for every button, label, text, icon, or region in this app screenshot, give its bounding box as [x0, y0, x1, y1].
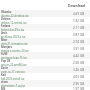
button[interactable]: SUSE: [0, 52, 90, 59]
staticText: Ubuntu: [1, 10, 12, 14]
staticText: mint-21-cinnamon.iso: [1, 42, 28, 45]
staticText: 2.95 GB: [73, 82, 85, 86]
staticText: Zorin: [1, 66, 8, 70]
staticText: Download: [68, 3, 85, 8]
staticText: archlinux-2023-x.iso: [1, 35, 26, 38]
staticText: Pop OS: [1, 59, 11, 63]
staticText: 2.74 GB: [73, 40, 85, 44]
staticText: opensuse-leap-15.iso: [1, 56, 27, 59]
staticText: 1.82 GB: [73, 19, 85, 23]
button[interactable]: Mint: [0, 38, 90, 45]
staticText: Kali: [1, 73, 6, 77]
staticText: ubuntu-22-desktop.iso: [1, 14, 29, 17]
staticText: 4.42 GB: [73, 54, 85, 58]
staticText: 2.11 GB: [73, 26, 85, 30]
staticText: Fedora: [1, 24, 11, 28]
staticText: 2.58 GB: [73, 61, 85, 65]
staticText: SUSE: [1, 52, 8, 56]
staticText: 4.03 GB: [73, 75, 85, 79]
staticText: 1.97 GB: [73, 87, 85, 90]
staticText: Debian: [1, 17, 11, 21]
button[interactable]: Arch: [0, 31, 90, 38]
staticText: MX: [1, 87, 6, 90]
button[interactable]: elem: [0, 80, 90, 87]
staticText: Arch: [1, 31, 8, 35]
staticText: fedora-live-39-x.iso: [1, 28, 25, 31]
staticText: debian-12-netinst.iso: [1, 21, 27, 24]
staticText: 0.87 GB: [73, 33, 85, 37]
staticText: Manjaro: [1, 45, 13, 49]
staticText: 4.69 GB: [73, 12, 85, 16]
staticText: kali-2023-install.iso: [1, 77, 25, 80]
staticText: 3.91 GB: [73, 47, 85, 51]
button[interactable]: Kali: [0, 73, 90, 80]
staticText: zorin-os-17-core.iso: [1, 70, 25, 73]
button[interactable]: Fedora: [0, 24, 90, 31]
staticText: pop-os-22-amd64.iso: [1, 63, 27, 66]
button[interactable]: Zorin: [0, 66, 90, 73]
staticText: 3.26 GB: [73, 68, 85, 72]
button[interactable]: MX: [0, 87, 90, 90]
staticText: manjaro-gnome-23.iso: [1, 49, 29, 52]
button[interactable]: Ubuntu: [0, 10, 90, 17]
staticText: elementary-7-os.iso: [1, 84, 26, 87]
staticText: elem: [1, 80, 8, 84]
button[interactable]: Manjaro: [0, 45, 90, 52]
staticText: Mint: [1, 38, 8, 42]
button[interactable]: Pop OS: [0, 59, 90, 66]
button[interactable]: Debian: [0, 17, 90, 24]
